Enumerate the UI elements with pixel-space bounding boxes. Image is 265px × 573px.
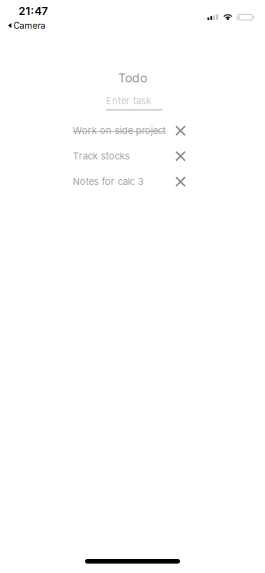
staticText: 21:47: [18, 4, 47, 18]
button[interactable]: Delete Work on side project: [172, 122, 189, 139]
staticText: Camera: [14, 20, 46, 31]
button[interactable]: Camera: [0, 20, 46, 31]
staticText: Work on side project: [73, 125, 166, 136]
button[interactable]: Delete Notes for calc 3: [172, 173, 189, 190]
staticText: Enter task: [106, 95, 151, 107]
button[interactable]: Delete Track stocks: [172, 147, 189, 165]
staticText: Notes for calc 3: [73, 176, 144, 187]
staticText: Todo: [118, 70, 147, 85]
staticText: Track stocks: [73, 150, 130, 162]
